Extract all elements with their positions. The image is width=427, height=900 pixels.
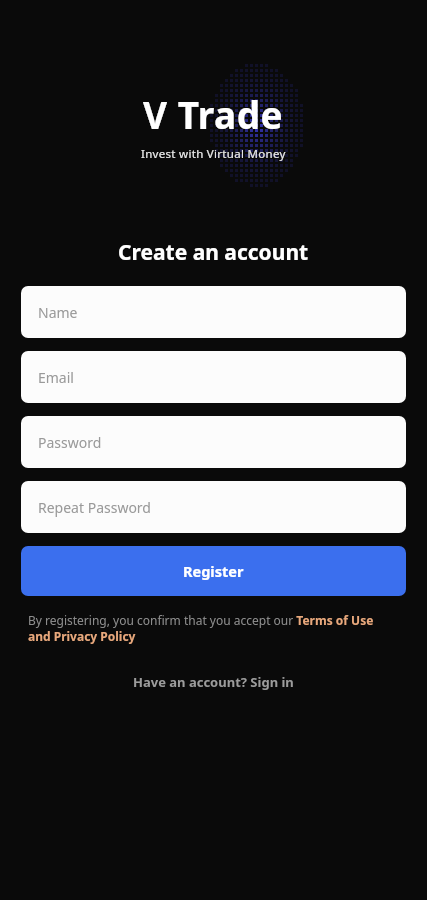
- button[interactable]: Name: [21, 286, 406, 338]
- button[interactable]: Password: [21, 416, 406, 468]
- staticText: By registering, you confirm that you acc…: [28, 612, 399, 645]
- staticText: Repeat Password: [38, 498, 151, 517]
- button[interactable]: Register: [21, 546, 406, 596]
- staticText: Have an account? Sign in: [133, 673, 294, 691]
- staticText: Register: [183, 561, 244, 581]
- staticText: Create an account: [118, 238, 309, 267]
- button[interactable]: Repeat Password: [21, 481, 406, 533]
- button[interactable]: Email: [21, 351, 406, 403]
- staticText: Password: [38, 433, 102, 452]
- staticText: Email: [38, 368, 74, 387]
- staticText: Name: [38, 303, 78, 322]
- staticText: V Trade: [143, 89, 284, 139]
- button[interactable]: Have an account? Sign in: [123, 669, 304, 695]
- staticText: Invest with Virtual Money: [141, 146, 286, 162]
- button[interactable]: By registering, you confirm that you acc…: [21, 612, 406, 645]
